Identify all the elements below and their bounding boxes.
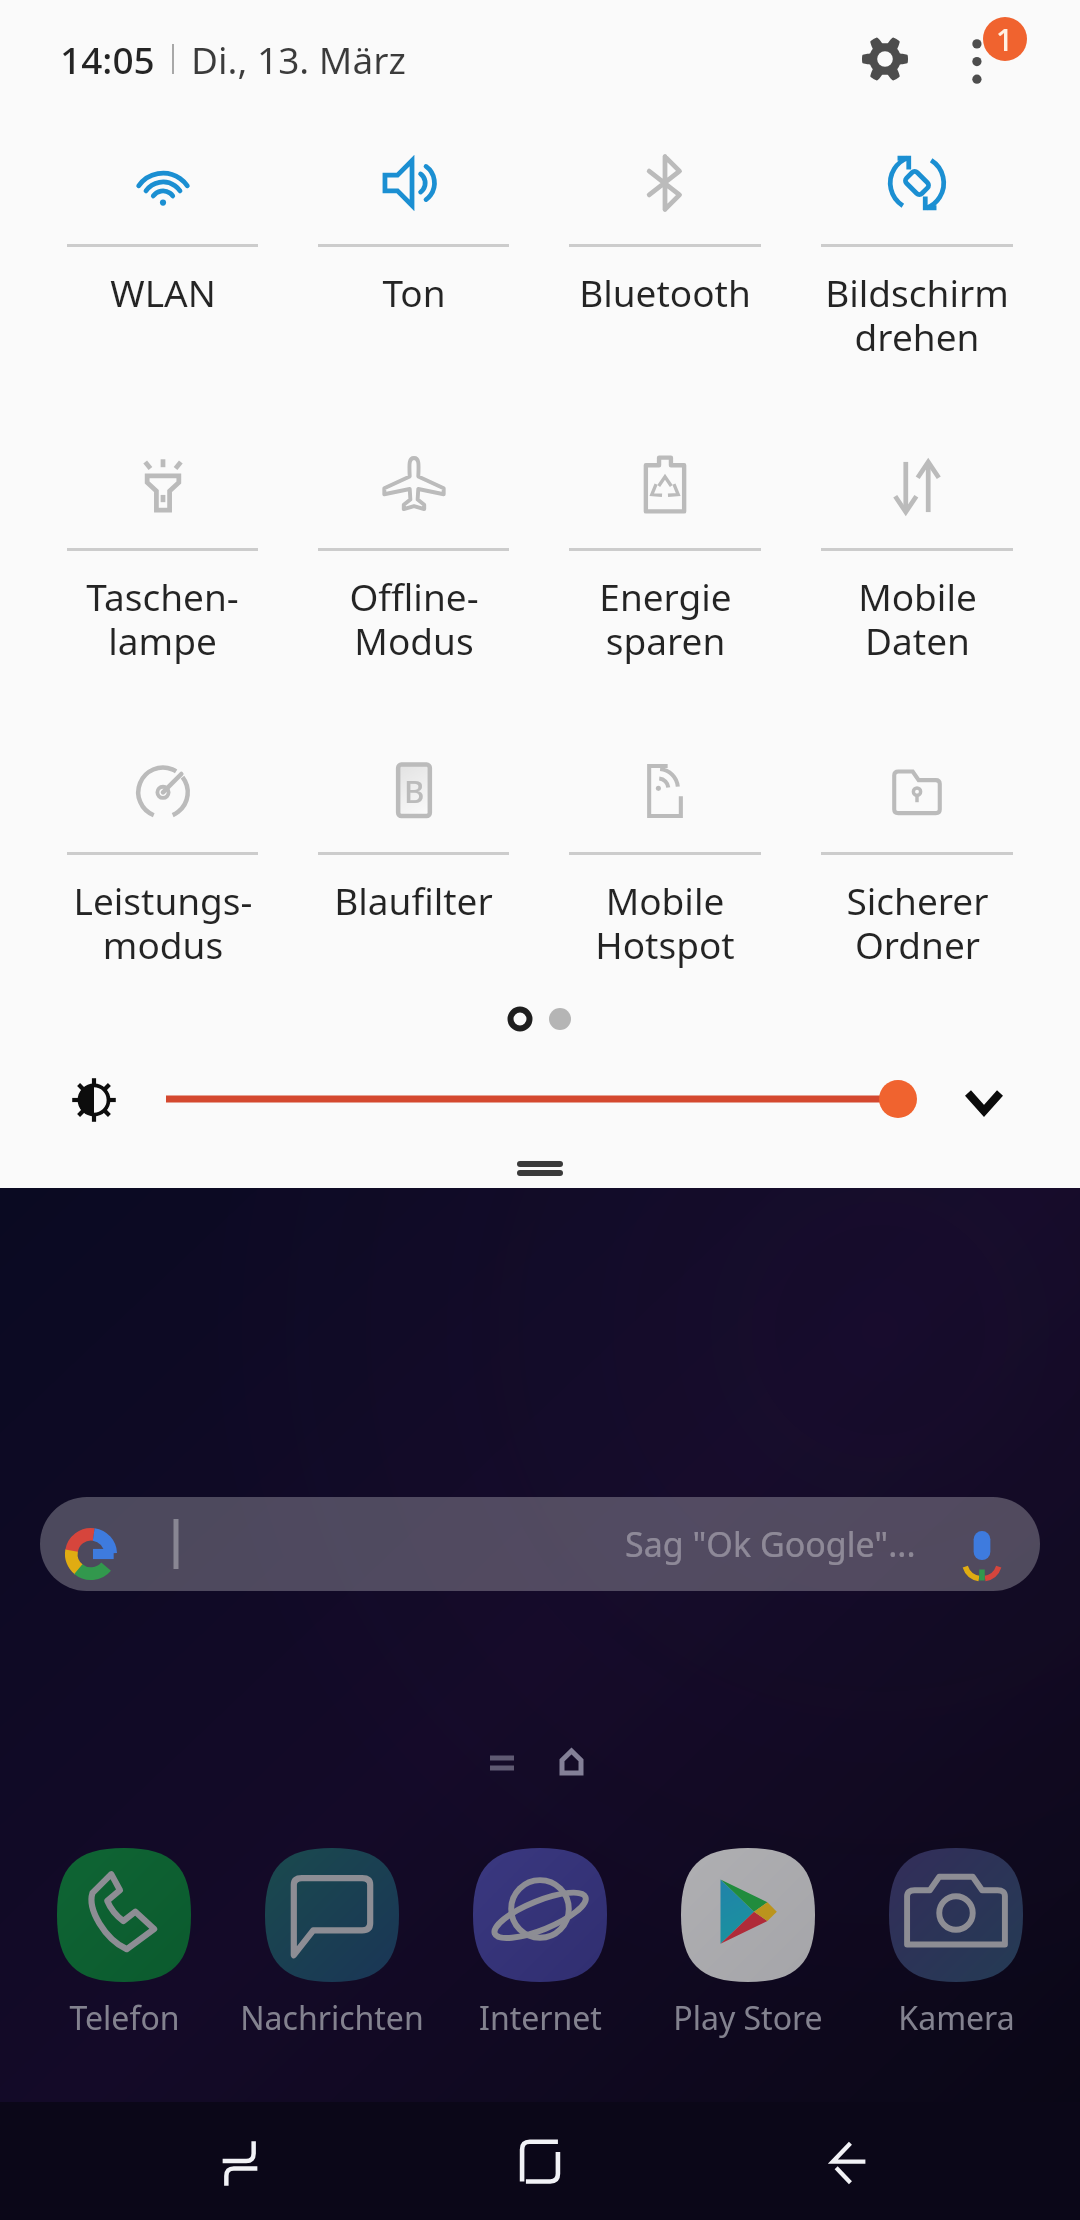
staticText: 14:05 bbox=[60, 34, 155, 84]
button[interactable]: Weitere Optionen bbox=[939, 11, 1035, 107]
button[interactable]: Startseite bbox=[547, 1738, 595, 1786]
button[interactable]: Telefon bbox=[22, 1848, 226, 2040]
staticText: Internet bbox=[479, 1996, 602, 2040]
button[interactable]: Auto-Helligkeit bbox=[64, 1070, 124, 1130]
button[interactable]: Zurück bbox=[785, 2102, 905, 2220]
staticText: Play Store bbox=[673, 1996, 823, 2040]
staticText: Taschen- lampe bbox=[86, 571, 239, 665]
staticText: Energie sparen bbox=[599, 571, 732, 665]
staticText: WLAN bbox=[110, 267, 216, 317]
staticText: Telefon bbox=[69, 1996, 180, 2040]
button[interactable]: Internet bbox=[438, 1848, 642, 2040]
button[interactable]: Sicherer Ordner bbox=[791, 764, 1043, 969]
staticText: Bildschirm drehen bbox=[825, 267, 1009, 361]
button[interactable]: Play Store bbox=[646, 1848, 850, 2040]
staticText: Offline- Modus bbox=[349, 571, 479, 665]
button[interactable]: Letzte Apps bbox=[180, 2102, 300, 2220]
button[interactable]: Energie sparen bbox=[539, 460, 791, 665]
staticText: Leistungs- modus bbox=[73, 875, 253, 969]
staticText: Ton bbox=[382, 267, 446, 317]
button[interactable]: Helligkeit bbox=[150, 1066, 934, 1132]
staticText: Bluetooth bbox=[579, 267, 751, 317]
button[interactable]: Kamera bbox=[854, 1848, 1058, 2040]
button[interactable]: Startbildschirm bbox=[480, 2102, 600, 2220]
button[interactable]: Offline- Modus bbox=[288, 460, 539, 665]
button[interactable]: Mehr anzeigen bbox=[952, 1070, 1016, 1134]
staticText: Nachrichten bbox=[240, 1996, 424, 2040]
button[interactable]: Mobile Hotspot bbox=[539, 764, 791, 969]
button[interactable]: B bbox=[288, 764, 539, 925]
button[interactable]: Leistungs- modus bbox=[37, 764, 288, 969]
button[interactable]: Panel schließen bbox=[500, 1150, 580, 1186]
button[interactable]: Ton bbox=[288, 156, 539, 317]
button[interactable]: WLAN bbox=[37, 156, 288, 317]
button[interactable]: Einstellungen bbox=[837, 11, 933, 107]
button[interactable]: Bildschirm drehen bbox=[791, 156, 1043, 361]
staticText: B bbox=[404, 770, 425, 812]
button[interactable]: Mobile Daten bbox=[791, 460, 1043, 665]
staticText: Di., 13. März bbox=[191, 34, 406, 84]
staticText: 1 bbox=[996, 19, 1014, 60]
button[interactable]: Google Suche bbox=[40, 1497, 1040, 1591]
staticText: Blaufilter bbox=[334, 875, 493, 925]
button[interactable]: Bluetooth bbox=[539, 156, 791, 317]
button[interactable]: App-Liste bbox=[478, 1740, 526, 1786]
staticText: Sicherer Ordner bbox=[846, 875, 989, 969]
button[interactable]: Taschen- lampe bbox=[37, 460, 288, 665]
staticText: Mobile Hotspot bbox=[595, 875, 735, 969]
staticText: Sag "Ok Google"... bbox=[625, 1521, 916, 1567]
staticText: Kamera bbox=[898, 1996, 1015, 2040]
staticText: Mobile Daten bbox=[858, 571, 977, 665]
button[interactable]: Nachrichten bbox=[230, 1848, 434, 2040]
